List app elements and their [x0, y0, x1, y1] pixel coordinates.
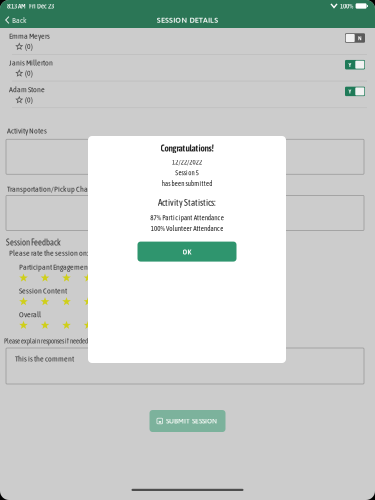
button[interactable]: Rate 1 star [19, 297, 28, 306]
button[interactable]: Rate 4 stars [83, 273, 92, 282]
button[interactable]: Attendance yes [345, 87, 365, 96]
button[interactable]: Rate 3 stars [62, 297, 71, 306]
staticText: 12/22/2022 [172, 158, 202, 166]
staticText: Y [348, 88, 351, 95]
staticText: Emma Meyers [9, 31, 50, 41]
staticText: Transportation/Pickup Changes [7, 184, 102, 193]
button[interactable]: Rate 4 stars [83, 297, 92, 306]
staticText: Janis Millerton [9, 58, 53, 67]
staticText: 8:13 AM Fri Dec 23 [7, 2, 54, 10]
button[interactable]: Rate 3 stars [62, 320, 71, 329]
button[interactable]: Rate 1 star [19, 273, 28, 282]
button[interactable]: Rate 1 star [19, 320, 28, 329]
button[interactable]: Back [0, 12, 33, 28]
staticText: SUBMIT SESSION [166, 417, 217, 425]
staticText: SESSION DETAILS [157, 16, 218, 24]
staticText: N [358, 34, 362, 41]
staticText: Back [12, 15, 27, 25]
button[interactable]: Rate 2 stars [40, 320, 49, 329]
button[interactable]: Attendance yes [345, 60, 365, 69]
staticText: OK [182, 247, 191, 256]
staticText: Activity Statistics: [158, 197, 216, 208]
staticText: Overall [19, 310, 41, 319]
staticText: Participant Engagement [19, 262, 90, 272]
button[interactable]: SUBMIT SESSION [149, 410, 225, 432]
button[interactable]: Rate 2 stars [40, 273, 49, 282]
staticText: 100% [340, 2, 353, 10]
button[interactable]: Attendance no [345, 33, 365, 43]
staticText: Adam Stone [9, 85, 45, 94]
staticText: (0) [25, 95, 33, 104]
staticText: (0) [25, 69, 33, 77]
staticText: 100% Volunteer Attendance [151, 225, 223, 232]
button[interactable]: Rate 4 stars [83, 320, 92, 329]
staticText: Congratulations! [160, 143, 213, 153]
staticText: Session Feedback [6, 237, 61, 247]
staticText: Please explain responses if needed [4, 337, 88, 345]
staticText: Y [348, 61, 351, 68]
button[interactable]: Rate 3 stars [62, 273, 71, 282]
staticText: Activity Notes [7, 126, 47, 135]
staticText: This is the comment [15, 354, 74, 363]
staticText: 87% Participant Attendance [150, 214, 224, 222]
button[interactable]: OK [137, 242, 236, 262]
staticText: Please rate the session on: [9, 248, 88, 257]
staticText: (0) [25, 42, 33, 51]
staticText: Session Content [19, 286, 67, 295]
button[interactable]: Rate 2 stars [40, 297, 49, 306]
staticText: has been submitted [162, 180, 212, 187]
staticText: Session 5 [175, 169, 199, 177]
